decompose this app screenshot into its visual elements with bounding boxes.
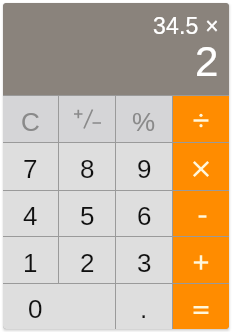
staticText: 2 bbox=[80, 248, 95, 277]
button[interactable]: C bbox=[3, 96, 58, 142]
staticText: C bbox=[21, 107, 40, 136]
button[interactable]: Multiply bbox=[173, 143, 229, 190]
button[interactable]: Plus bbox=[173, 237, 229, 283]
button[interactable]: . bbox=[116, 284, 172, 329]
button[interactable]: 9 bbox=[116, 143, 172, 190]
staticText: 2 bbox=[195, 38, 219, 85]
button[interactable]: 6 bbox=[116, 191, 172, 236]
button[interactable]: Equals bbox=[173, 284, 229, 329]
button[interactable]: 3 bbox=[116, 237, 172, 283]
staticText: 6 bbox=[137, 201, 152, 230]
staticText: 4 bbox=[23, 201, 38, 230]
button[interactable]: 4 bbox=[3, 191, 58, 236]
button[interactable]: 2 bbox=[59, 237, 115, 283]
staticText: 34.5 × bbox=[153, 13, 219, 39]
button[interactable]: Plus or minus bbox=[59, 96, 115, 142]
staticText: 0 bbox=[28, 294, 43, 323]
button[interactable]: 0 bbox=[3, 284, 115, 329]
staticText: . bbox=[140, 294, 148, 323]
staticText: 5 bbox=[80, 201, 95, 230]
staticText: 8 bbox=[80, 154, 95, 183]
button[interactable]: % bbox=[116, 96, 172, 142]
staticText: 9 bbox=[137, 154, 152, 183]
staticText: % bbox=[132, 107, 156, 136]
staticText: 3 bbox=[137, 248, 152, 277]
staticText: 1 bbox=[23, 248, 38, 277]
button[interactable]: 5 bbox=[59, 191, 115, 236]
button[interactable]: Divide bbox=[173, 96, 229, 142]
staticText: 7 bbox=[23, 154, 38, 183]
button[interactable]: Minus bbox=[173, 191, 229, 236]
button[interactable]: 7 bbox=[3, 143, 58, 190]
button[interactable]: 8 bbox=[59, 143, 115, 190]
button[interactable]: 1 bbox=[3, 237, 58, 283]
